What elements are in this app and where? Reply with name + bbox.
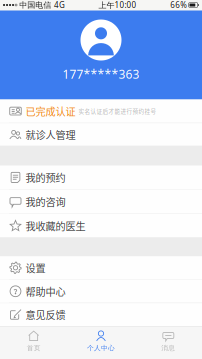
button[interactable]: 我的预约 <box>0 165 202 189</box>
button[interactable]: 已完成认证 <box>0 99 202 123</box>
staticText: 中国电信 <box>19 0 51 10</box>
staticText: 首页 <box>27 344 41 352</box>
staticText: 66% <box>170 0 187 10</box>
button[interactable]: 设置 <box>0 256 202 279</box>
button[interactable]: 我收藏的医生 <box>0 214 202 237</box>
staticText: 就诊人管理 <box>25 127 75 142</box>
button[interactable]: 消息 <box>135 327 202 359</box>
staticText: 我收藏的医生 <box>25 218 85 233</box>
button[interactable]: 意见反馈 <box>0 303 202 326</box>
staticText: 消息 <box>161 344 175 352</box>
button[interactable]: 我的咨询 <box>0 190 202 213</box>
button[interactable]: 个人中心 <box>67 327 135 359</box>
staticText: 实名认证后才能进行预约挂号 <box>78 107 156 115</box>
staticText: 个人中心 <box>87 344 115 352</box>
staticText: 设置 <box>25 260 45 275</box>
button[interactable]: 首页 <box>0 327 67 359</box>
staticText: 上午10:00 <box>99 0 137 10</box>
button[interactable]: 帮助中心 <box>0 280 202 303</box>
staticText: 我的预约 <box>25 170 65 185</box>
staticText: 我的咨询 <box>25 194 65 209</box>
staticText: 意见反馈 <box>25 307 65 322</box>
button[interactable]: 就诊人管理 <box>0 123 202 146</box>
staticText: 4G <box>54 0 65 10</box>
staticText: 帮助中心 <box>25 284 65 299</box>
staticText: 177*****363 <box>62 66 139 82</box>
staticText: 已完成认证 <box>25 104 75 118</box>
